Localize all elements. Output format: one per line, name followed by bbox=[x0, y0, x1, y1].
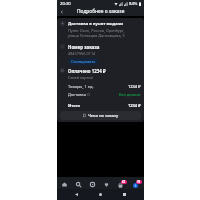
button[interactable]: Recents bbox=[120, 190, 129, 199]
staticText: Доставка bbox=[68, 92, 86, 97]
staticText: 1234 ₽ bbox=[128, 103, 141, 108]
staticText: Доставка в пункт выдачи bbox=[68, 21, 124, 27]
staticText: улица Геннадия Донковцева, 5 bbox=[68, 33, 125, 38]
staticText: Оплачено 1234 ₽ bbox=[68, 68, 106, 74]
staticText: 19 bbox=[137, 180, 141, 184]
button[interactable]: Заказы bbox=[85, 179, 99, 189]
button[interactable]: Home bbox=[96, 190, 105, 199]
button[interactable]: Скопировать bbox=[68, 58, 99, 65]
staticText: 20:30 bbox=[60, 1, 71, 7]
staticText: 1234 ₽ bbox=[128, 84, 141, 89]
staticText: Номер заказа bbox=[68, 44, 100, 50]
staticText: Скопировать bbox=[71, 59, 96, 64]
button[interactable]: Профиль bbox=[129, 179, 144, 189]
button[interactable]: Back bbox=[72, 190, 81, 199]
staticText: 84% bbox=[129, 1, 138, 7]
staticText: Итого bbox=[68, 103, 80, 108]
button[interactable]: Корзина bbox=[114, 179, 129, 189]
button[interactable]: Чеки по заказу bbox=[60, 111, 141, 120]
staticText: Чеки по заказу bbox=[88, 113, 119, 119]
button[interactable]: Поиск bbox=[71, 179, 85, 189]
staticText: Своей картой bbox=[68, 75, 93, 80]
staticText: Пункт Ozon, Россия, Оренбург, bbox=[68, 28, 125, 33]
staticText: 67 bbox=[122, 180, 126, 184]
staticText: 48437966-0114 bbox=[68, 51, 96, 56]
button[interactable]: Главная bbox=[57, 179, 71, 189]
button[interactable]: Избранное bbox=[99, 179, 114, 189]
button[interactable]: Назад bbox=[57, 7, 66, 16]
staticText: Подробнее о заказе bbox=[77, 8, 125, 15]
staticText: Товары, 1 ед. bbox=[68, 84, 94, 89]
staticText: Без доплат bbox=[119, 92, 141, 97]
